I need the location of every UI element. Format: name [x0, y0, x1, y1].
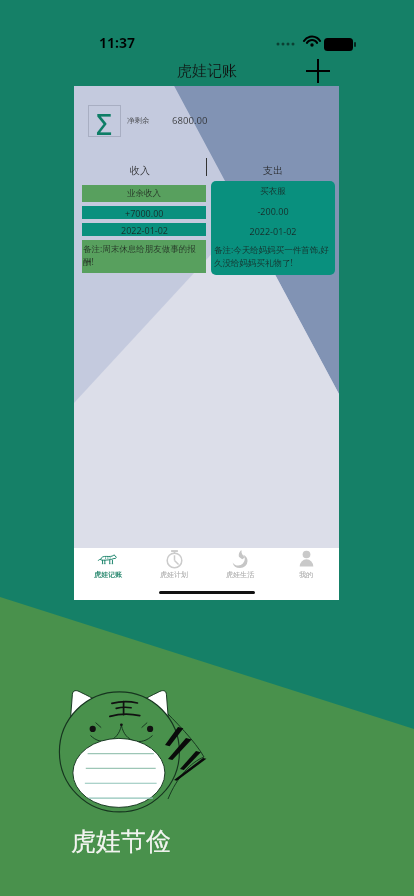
staticText: 虎娃计划: [160, 570, 188, 579]
button[interactable]: 虎娃生活: [207, 548, 273, 584]
staticText: 2022-01-02: [121, 224, 168, 236]
button[interactable]: 收入: [74, 155, 206, 185]
button[interactable]: 虎娃记账: [74, 548, 141, 584]
staticText: 我的: [299, 570, 313, 579]
staticText: 备注:今天给妈妈买一件首饰,好久没给妈妈买礼物了!: [214, 244, 332, 269]
staticText: 虎娃记账: [94, 570, 122, 579]
staticText: 净剩余: [127, 116, 150, 125]
staticText: 6800.00: [172, 114, 208, 127]
staticText: 虎娃节俭: [71, 826, 171, 857]
button[interactable]: 我的: [273, 548, 339, 584]
button[interactable]: 支出: [207, 155, 339, 185]
staticText: 备注:周末休息给朋友做事的报酬!: [83, 243, 206, 268]
button[interactable]: Add: [304, 57, 332, 85]
staticText: 业余收入: [127, 188, 161, 199]
button[interactable]: 业余收入: [82, 185, 206, 273]
staticText: 11:37: [99, 33, 135, 52]
staticText: 支出: [263, 164, 283, 177]
button[interactable]: 买衣服: [211, 181, 335, 275]
staticText: +7000.00: [125, 207, 164, 219]
staticText: 收入: [130, 164, 150, 177]
staticText: Σ: [96, 105, 113, 137]
staticText: 买衣服: [214, 186, 332, 197]
button[interactable]: 虎娃计划: [141, 548, 207, 584]
staticText: -200.00: [214, 205, 332, 217]
staticText: 虎娃生活: [226, 570, 254, 579]
staticText: 2022-01-02: [214, 225, 332, 237]
staticText: 虎娃记账: [177, 62, 237, 81]
